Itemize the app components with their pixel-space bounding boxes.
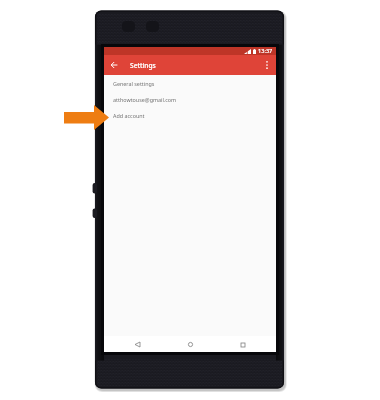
button[interactable]: More options — [261, 59, 273, 71]
button[interactable]: atthowtouse@gmail.com — [104, 91, 276, 107]
staticText: Settings — [130, 61, 156, 70]
button[interactable]: Back — [131, 338, 144, 351]
staticText: Add account — [113, 112, 145, 119]
button[interactable]: Back — [107, 58, 121, 72]
button[interactable]: Recents — [236, 338, 249, 351]
button[interactable]: Home — [184, 338, 197, 351]
staticText: General settings — [113, 80, 155, 87]
button[interactable]: Add account — [104, 107, 276, 123]
staticText: 13:37 — [258, 47, 273, 55]
button[interactable]: General settings — [104, 75, 276, 91]
staticText: atthowtouse@gmail.com — [113, 96, 177, 103]
